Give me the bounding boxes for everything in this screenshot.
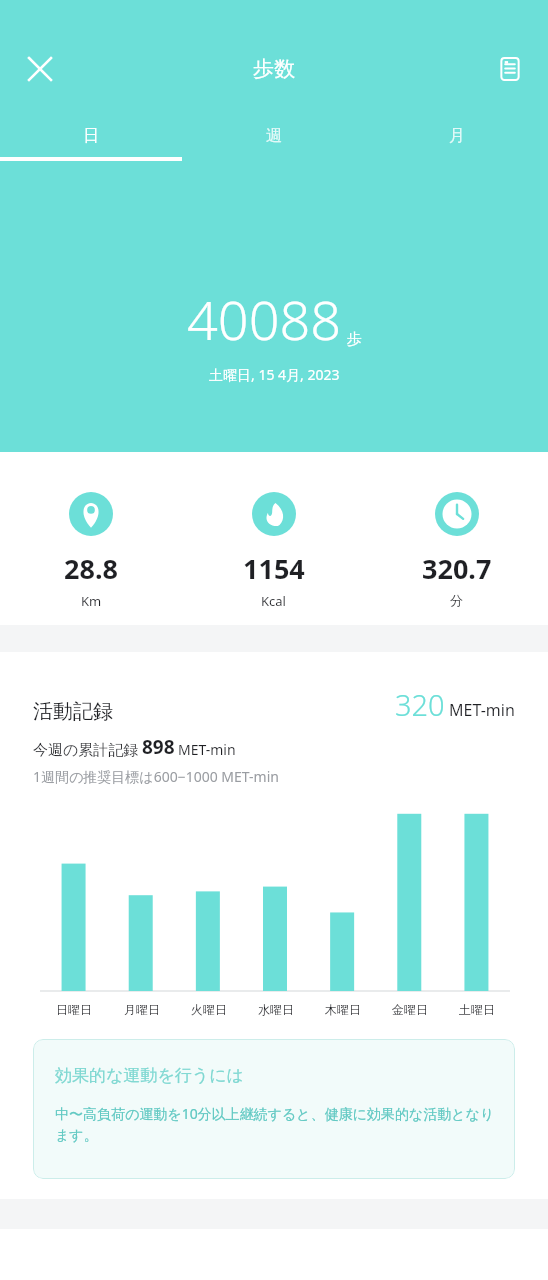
button[interactable]: 月: [365, 110, 548, 162]
staticText: 320.7: [422, 550, 492, 587]
staticText: MET-min: [178, 740, 236, 759]
staticText: Kcal: [261, 592, 286, 610]
staticText: 歩数: [253, 56, 295, 82]
staticText: 1週間の推奨目標は600−1000 MET-min: [33, 767, 279, 786]
staticText: 28.8: [64, 550, 118, 587]
button[interactable]: 320.7: [365, 492, 548, 608]
staticText: 1154: [243, 550, 305, 587]
staticText: 水曜日: [258, 1002, 294, 1017]
staticText: 日: [83, 126, 99, 146]
staticText: 歩: [347, 330, 362, 349]
staticText: 木曜日: [325, 1002, 361, 1017]
staticText: 分: [450, 592, 463, 608]
staticText: 320: [395, 685, 445, 724]
button[interactable]: Records: [486, 45, 534, 93]
staticText: 40088: [187, 282, 342, 356]
staticText: 週: [266, 126, 282, 146]
staticText: 月曜日: [124, 1002, 160, 1017]
staticText: 効果的な運動を行うには: [55, 1065, 244, 1086]
staticText: 金曜日: [392, 1002, 428, 1017]
staticText: 活動記録: [33, 699, 113, 724]
button[interactable]: Close: [16, 45, 64, 93]
staticText: 中〜高負荷の運動を10分以上継続すると、健康に効果的な活動となります。: [55, 1104, 497, 1144]
staticText: 月: [449, 126, 465, 146]
button[interactable]: 効果的な運動を行うには: [33, 1039, 515, 1179]
staticText: MET-min: [449, 699, 515, 721]
staticText: 898: [142, 734, 175, 760]
staticText: 土曜日: [459, 1002, 495, 1017]
staticText: 日曜日: [56, 1002, 92, 1017]
staticText: 今週の累計記録: [33, 741, 139, 760]
button[interactable]: 28.8: [0, 492, 182, 610]
staticText: 土曜日, 15 4月, 2023: [209, 365, 340, 384]
button[interactable]: 日: [0, 110, 182, 162]
button[interactable]: 週: [182, 110, 365, 162]
staticText: 火曜日: [191, 1002, 227, 1017]
button[interactable]: 1154: [182, 492, 365, 610]
staticText: Km: [81, 592, 102, 610]
